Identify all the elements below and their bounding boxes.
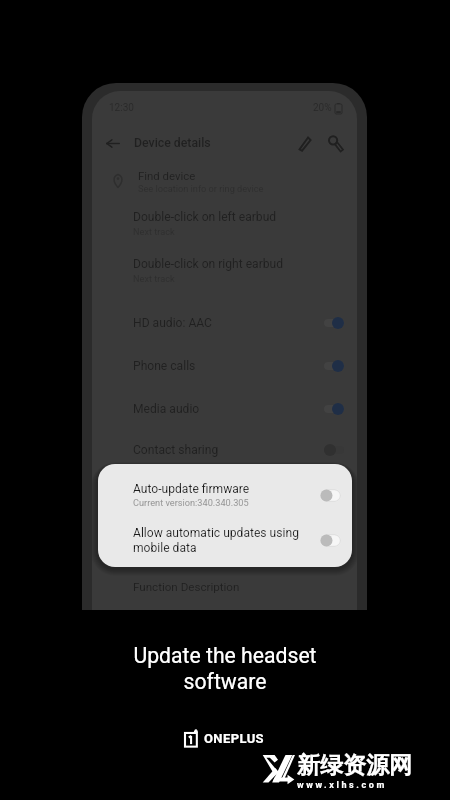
staticText: Find device bbox=[138, 169, 196, 182]
staticText: Next track bbox=[133, 273, 175, 284]
staticText: Phone calls bbox=[133, 359, 196, 373]
staticText: Function Description bbox=[133, 580, 240, 594]
staticText: Device details bbox=[134, 136, 211, 150]
button[interactable]: Back bbox=[99, 129, 127, 157]
staticText: Auto-update firmware bbox=[133, 482, 250, 496]
button[interactable]: Double-click on left earbud bbox=[92, 203, 357, 243]
button[interactable]: Allow automatic updates using mobile dat… bbox=[98, 517, 352, 563]
staticText: Media audio bbox=[133, 402, 200, 416]
staticText: Update the headset software bbox=[0, 643, 450, 694]
staticText: 12:30 bbox=[109, 102, 134, 114]
staticText: 新绿资源网 bbox=[297, 751, 412, 780]
button[interactable]: HD audio: AAC bbox=[92, 306, 357, 340]
staticText: www.xlhs.com bbox=[297, 780, 387, 791]
staticText: Double-click on left earbud bbox=[133, 210, 277, 224]
staticText: Allow automatic updates using mobile dat… bbox=[133, 526, 299, 555]
button[interactable]: Media audio bbox=[92, 392, 357, 426]
staticText: ONEPLUS bbox=[204, 731, 265, 746]
button[interactable]: Search bbox=[322, 130, 348, 156]
staticText: 20% bbox=[313, 102, 332, 114]
staticText: Next track bbox=[133, 226, 175, 237]
staticText: Double-click on right earbud bbox=[133, 257, 284, 271]
button[interactable]: Edit bbox=[292, 130, 318, 156]
button[interactable]: Double-click on right earbud bbox=[92, 250, 357, 290]
button[interactable]: Auto-update firmware bbox=[98, 472, 352, 518]
staticText: HD audio: AAC bbox=[133, 316, 212, 330]
button[interactable]: Phone calls bbox=[92, 349, 357, 383]
staticText: See location info or ring device bbox=[138, 183, 264, 194]
button[interactable]: Contact sharing bbox=[92, 433, 357, 467]
staticText: Contact sharing bbox=[133, 443, 219, 457]
staticText: Current version:340.340.305 bbox=[133, 497, 249, 508]
